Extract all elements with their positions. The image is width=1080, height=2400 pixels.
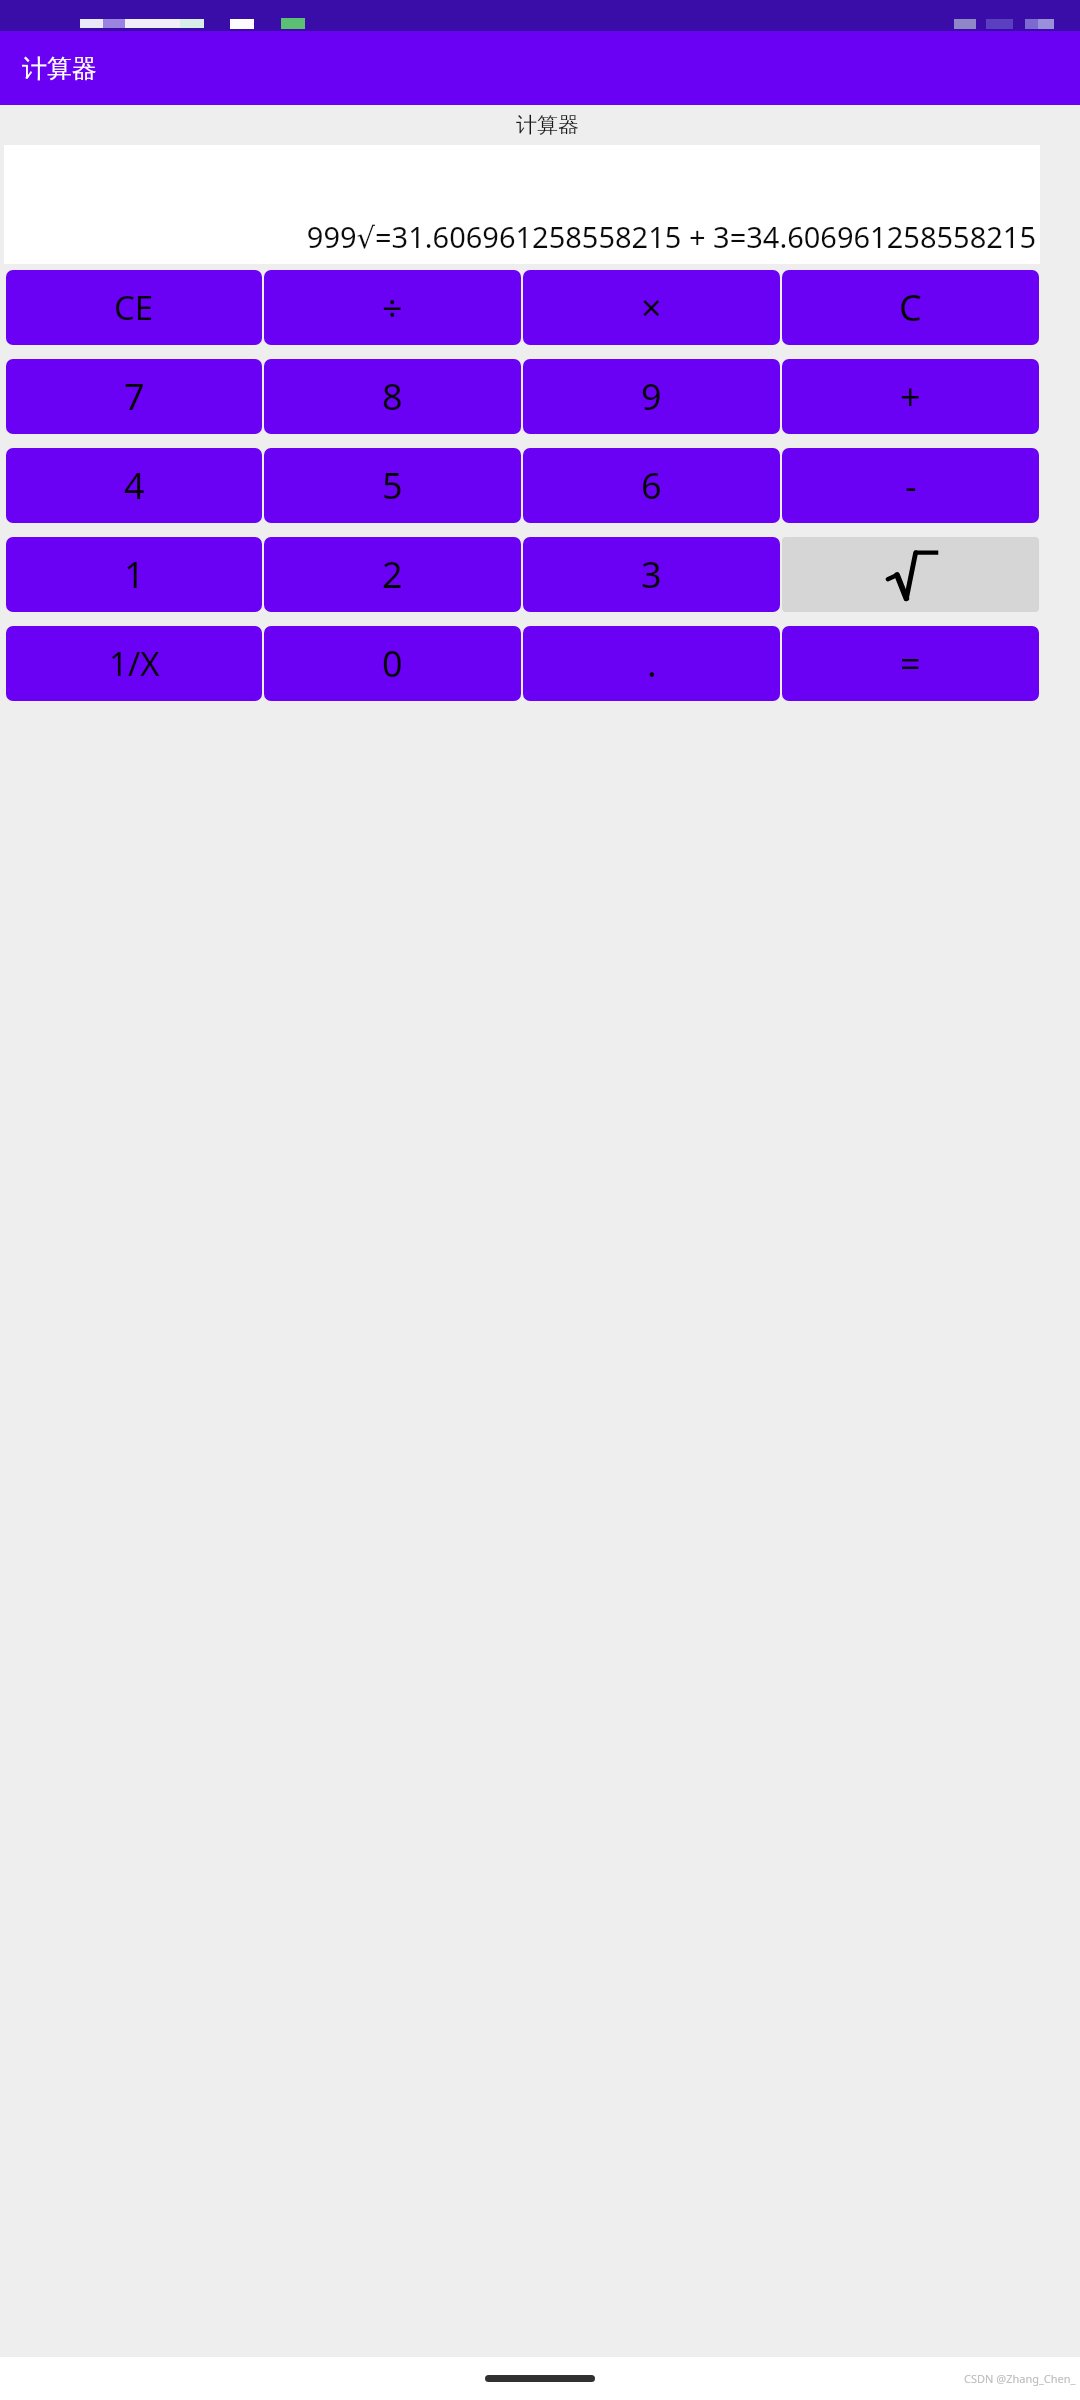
staticText: = [900, 639, 921, 688]
staticText: C [899, 283, 922, 332]
staticText: CSDN @Zhang_Chen_ [964, 2371, 1076, 2386]
staticText: × [641, 283, 662, 332]
button[interactable]: 4 [6, 448, 262, 523]
staticText: 4 [124, 461, 145, 510]
staticText: 0 [382, 639, 403, 688]
button[interactable]: - [782, 448, 1039, 523]
staticText: 9 [641, 372, 662, 421]
button[interactable]: 3 [523, 537, 780, 612]
button[interactable]: 2 [264, 537, 521, 612]
staticText: 6 [641, 461, 662, 510]
staticText: ÷ [382, 283, 403, 332]
button[interactable]: 9 [523, 359, 780, 434]
staticText: - [905, 461, 917, 510]
staticText: 计算器 [516, 112, 579, 138]
button[interactable]: . [523, 626, 780, 701]
button[interactable]: + [782, 359, 1039, 434]
button[interactable]: 7 [6, 359, 262, 434]
button[interactable]: × [523, 270, 780, 345]
staticText: 999√=31.606961258558215 + 3=34.606961258… [10, 217, 1036, 256]
staticText: 2 [382, 550, 403, 599]
staticText: 3 [641, 550, 662, 599]
staticText: 计算器 [22, 53, 97, 84]
staticText: 8 [382, 372, 403, 421]
button[interactable]: C [782, 270, 1039, 345]
button[interactable]: ÷ [264, 270, 521, 345]
staticText: . [647, 639, 657, 688]
button[interactable]: 5 [264, 448, 521, 523]
staticText: 1/X [109, 641, 160, 686]
staticText: 1 [124, 550, 145, 599]
button[interactable]: 6 [523, 448, 780, 523]
button[interactable]: Square root [782, 537, 1039, 612]
button[interactable]: = [782, 626, 1039, 701]
staticText: 7 [124, 372, 145, 421]
staticText: CE [114, 285, 154, 330]
staticText: 5 [382, 461, 403, 510]
button[interactable]: 8 [264, 359, 521, 434]
button[interactable]: 0 [264, 626, 521, 701]
button[interactable]: 1/X [6, 626, 262, 701]
button[interactable]: 1 [6, 537, 262, 612]
button[interactable]: CE [6, 270, 262, 345]
staticText: + [900, 372, 921, 421]
